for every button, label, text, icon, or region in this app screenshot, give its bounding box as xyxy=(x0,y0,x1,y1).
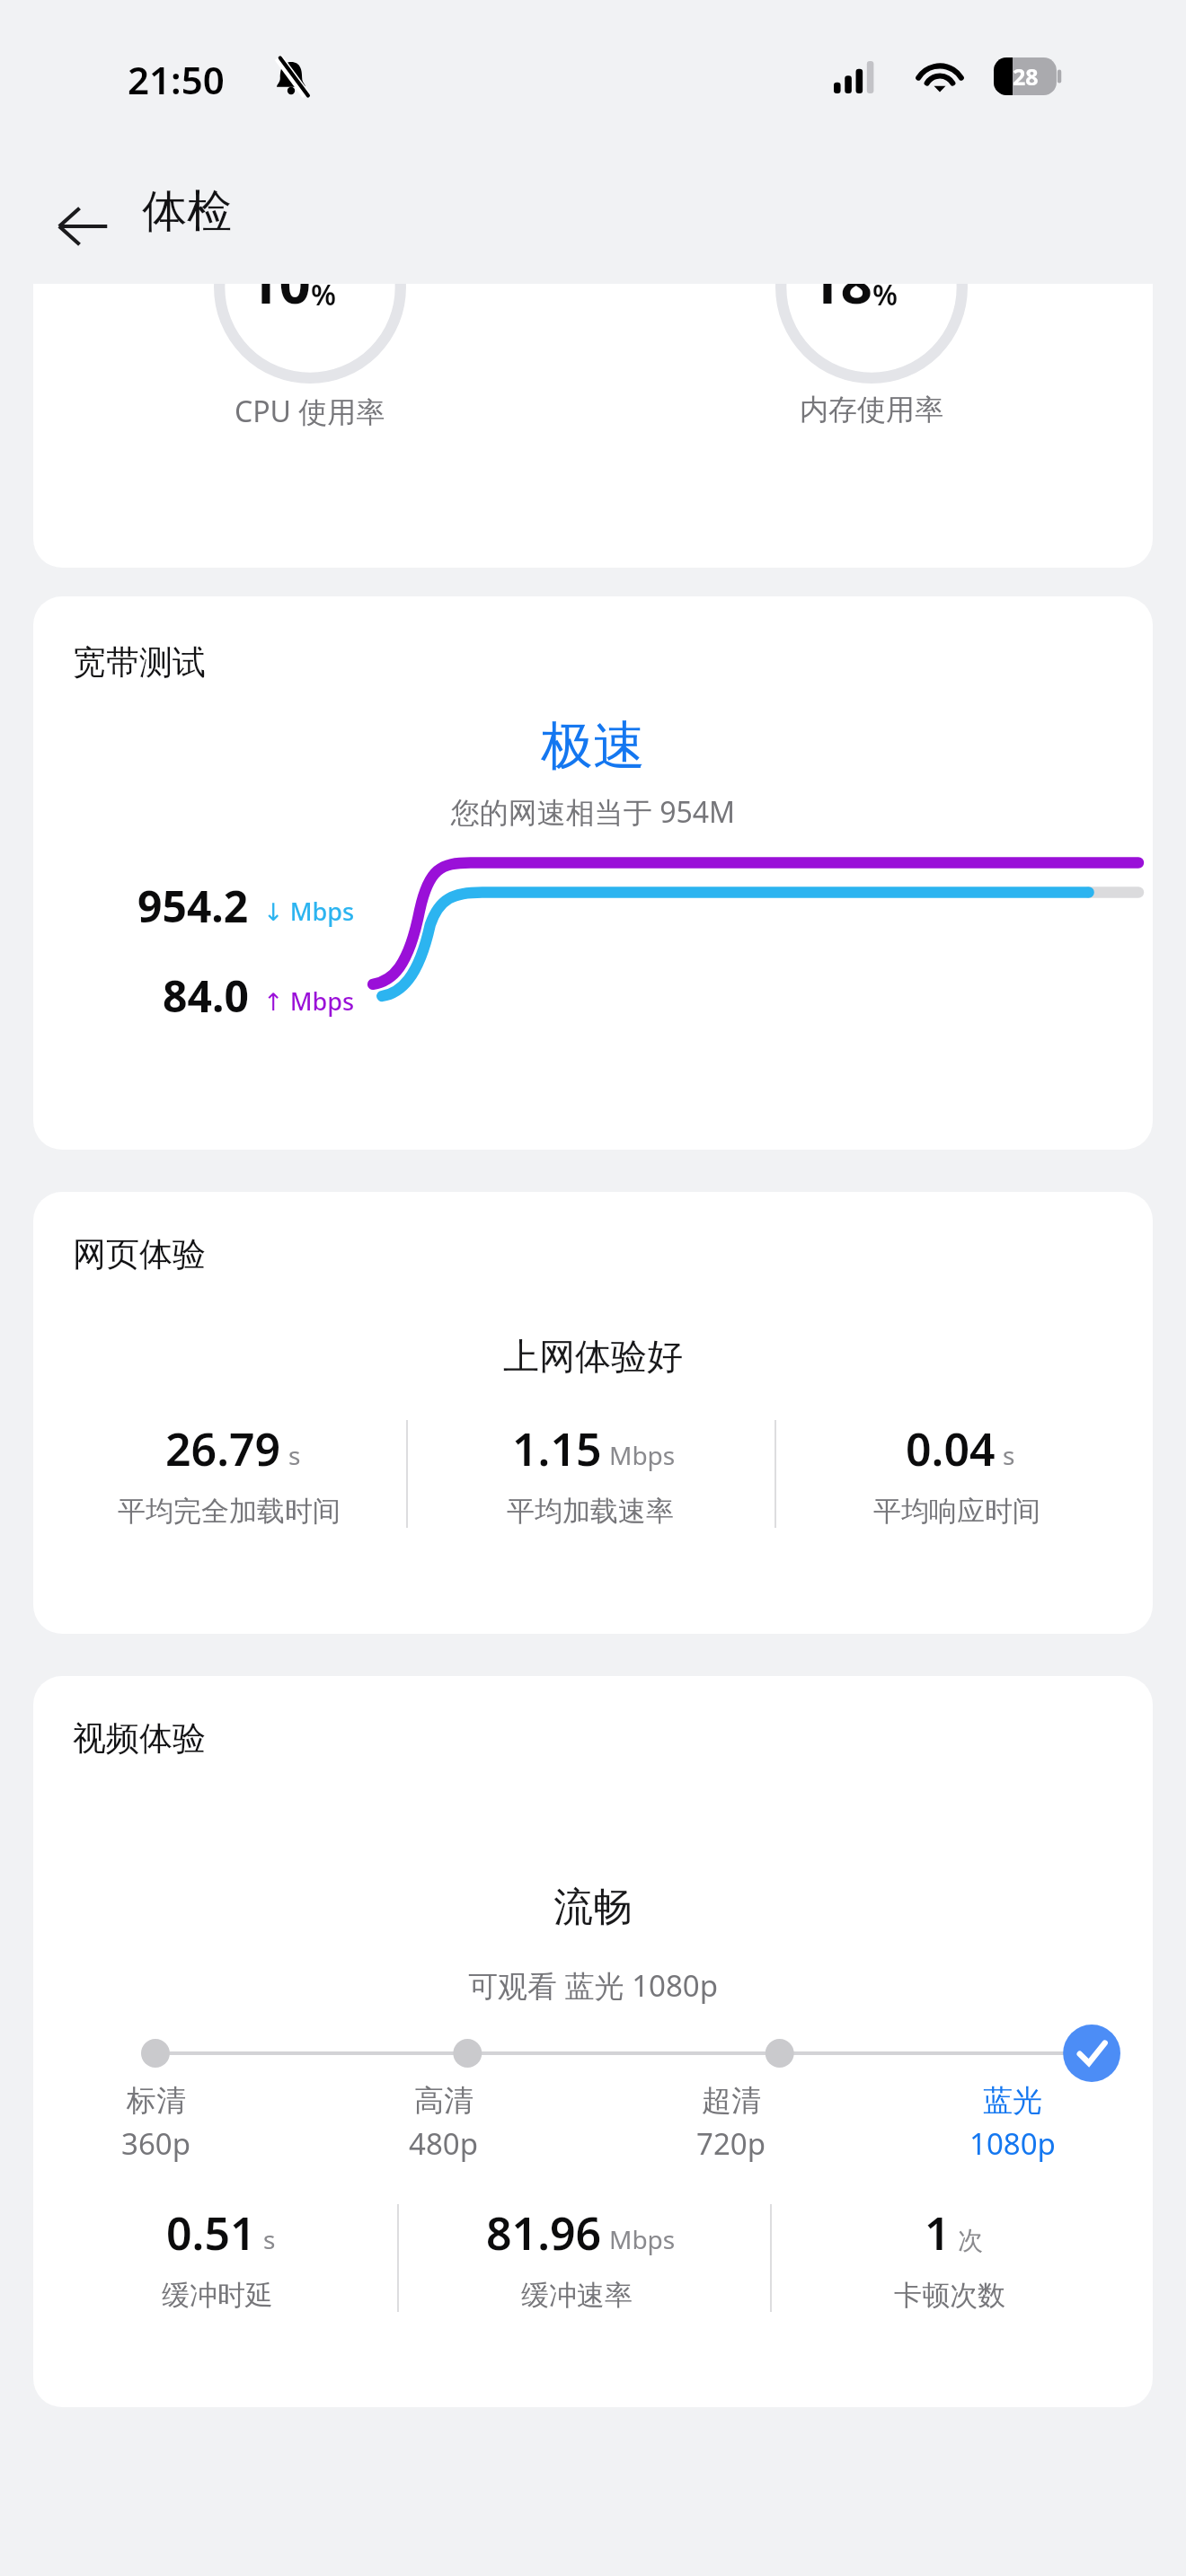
button[interactable]: 宽带测试 xyxy=(33,596,1153,1150)
staticText: ↓ Mbps xyxy=(263,895,355,928)
button[interactable]: Back xyxy=(31,174,135,278)
staticText: 1080p xyxy=(969,2123,1056,2164)
staticText: 缓冲时延 xyxy=(162,2278,273,2313)
staticText: 0.51 xyxy=(166,2202,256,2263)
staticText: Mbps xyxy=(609,1438,676,1472)
staticText: 上网体验好 xyxy=(33,1334,1153,1379)
staticText: 平均完全加载时间 xyxy=(118,1494,341,1529)
staticText: s xyxy=(263,2222,276,2256)
staticText: 次 xyxy=(958,2225,983,2256)
staticText: 360p xyxy=(121,2123,190,2164)
button[interactable]: 视频体验 xyxy=(33,1676,1153,2407)
staticText: 平均响应时间 xyxy=(873,1494,1040,1529)
staticText: 480p xyxy=(409,2123,478,2164)
staticText: 28 xyxy=(1013,61,1039,92)
staticText: 体检 xyxy=(142,183,232,240)
staticText: 0.04 xyxy=(906,1418,996,1479)
button[interactable]: 网页体验 xyxy=(33,1192,1153,1634)
staticText: % xyxy=(872,284,898,314)
staticText: 954.2 xyxy=(137,877,249,935)
staticText: CPU 使用率 xyxy=(235,392,385,431)
staticText: s xyxy=(1003,1438,1015,1472)
staticText: 卡顿次数 xyxy=(894,2278,1005,2313)
staticText: ↑ Mbps xyxy=(263,984,355,1018)
staticText: 1 xyxy=(925,2202,951,2263)
staticText: 84.0 xyxy=(163,966,249,1025)
staticText: 可观看 蓝光 1080p xyxy=(33,1965,1153,2006)
staticText: Mbps xyxy=(609,2222,676,2256)
staticText: s xyxy=(288,1438,301,1472)
staticText: 平均加载速率 xyxy=(507,1494,674,1529)
staticText: 超清 xyxy=(702,2082,761,2120)
staticText: 1.15 xyxy=(512,1418,602,1479)
staticText: 26.79 xyxy=(165,1418,281,1479)
staticText: 720p xyxy=(696,2123,766,2164)
staticText: 视频体验 xyxy=(73,1717,206,1760)
staticText: 内存使用率 xyxy=(800,392,943,428)
staticText: % xyxy=(311,284,337,314)
staticText: 缓冲速率 xyxy=(521,2278,633,2313)
staticText: 宽带测试 xyxy=(73,641,206,684)
staticText: 蓝光 xyxy=(983,2082,1042,2120)
staticText: 81.96 xyxy=(486,2202,602,2263)
staticText: 流畅 xyxy=(33,1883,1153,1932)
staticText: 您的网速相当于 954M xyxy=(33,792,1153,832)
staticText: 高清 xyxy=(414,2082,474,2120)
staticText: 标清 xyxy=(127,2082,186,2120)
staticText: 极速 xyxy=(33,713,1153,779)
staticText: 10 xyxy=(247,284,311,320)
staticText: 21:50 xyxy=(128,54,225,105)
button[interactable]: 10 xyxy=(33,284,1153,568)
staticText: 18 xyxy=(809,284,872,320)
staticText: 网页体验 xyxy=(73,1233,206,1275)
